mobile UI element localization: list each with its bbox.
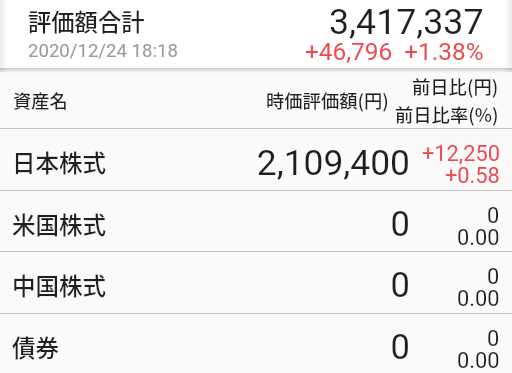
- staticText: 債券: [12, 330, 59, 364]
- staticText: 米国株式: [12, 207, 106, 241]
- staticText: 日本株式: [12, 145, 106, 179]
- staticText: +46,796 +1.38%: [305, 37, 484, 66]
- staticText: 0: [0, 265, 410, 305]
- staticText: 前日比(円): [412, 73, 499, 99]
- staticText: 時価評価額(円): [266, 87, 389, 113]
- staticText: 0: [0, 204, 410, 244]
- staticText: 0.00: [457, 225, 500, 251]
- button[interactable]: 米国株式: [0, 191, 512, 252]
- staticText: 前日比率(%): [395, 101, 499, 127]
- staticText: 0: [487, 203, 500, 229]
- staticText: 2,109,400: [0, 142, 410, 183]
- staticText: 評価額合計: [28, 4, 145, 38]
- staticText: +0.58: [445, 163, 500, 189]
- button[interactable]: 債券: [0, 314, 512, 373]
- button[interactable]: 中国株式: [0, 252, 512, 314]
- staticText: 資産名: [13, 87, 68, 113]
- staticText: 0: [487, 326, 500, 352]
- staticText: 2020/12/24 18:18: [28, 40, 178, 62]
- staticText: 0.00: [457, 286, 500, 312]
- staticText: 0.00: [457, 348, 500, 373]
- staticText: +12,250: [422, 141, 500, 167]
- staticText: 3,417,337: [329, 1, 484, 43]
- staticText: 0: [0, 327, 410, 367]
- staticText: 中国株式: [12, 268, 106, 302]
- button[interactable]: 日本株式: [0, 129, 512, 191]
- staticText: 0: [487, 264, 500, 290]
